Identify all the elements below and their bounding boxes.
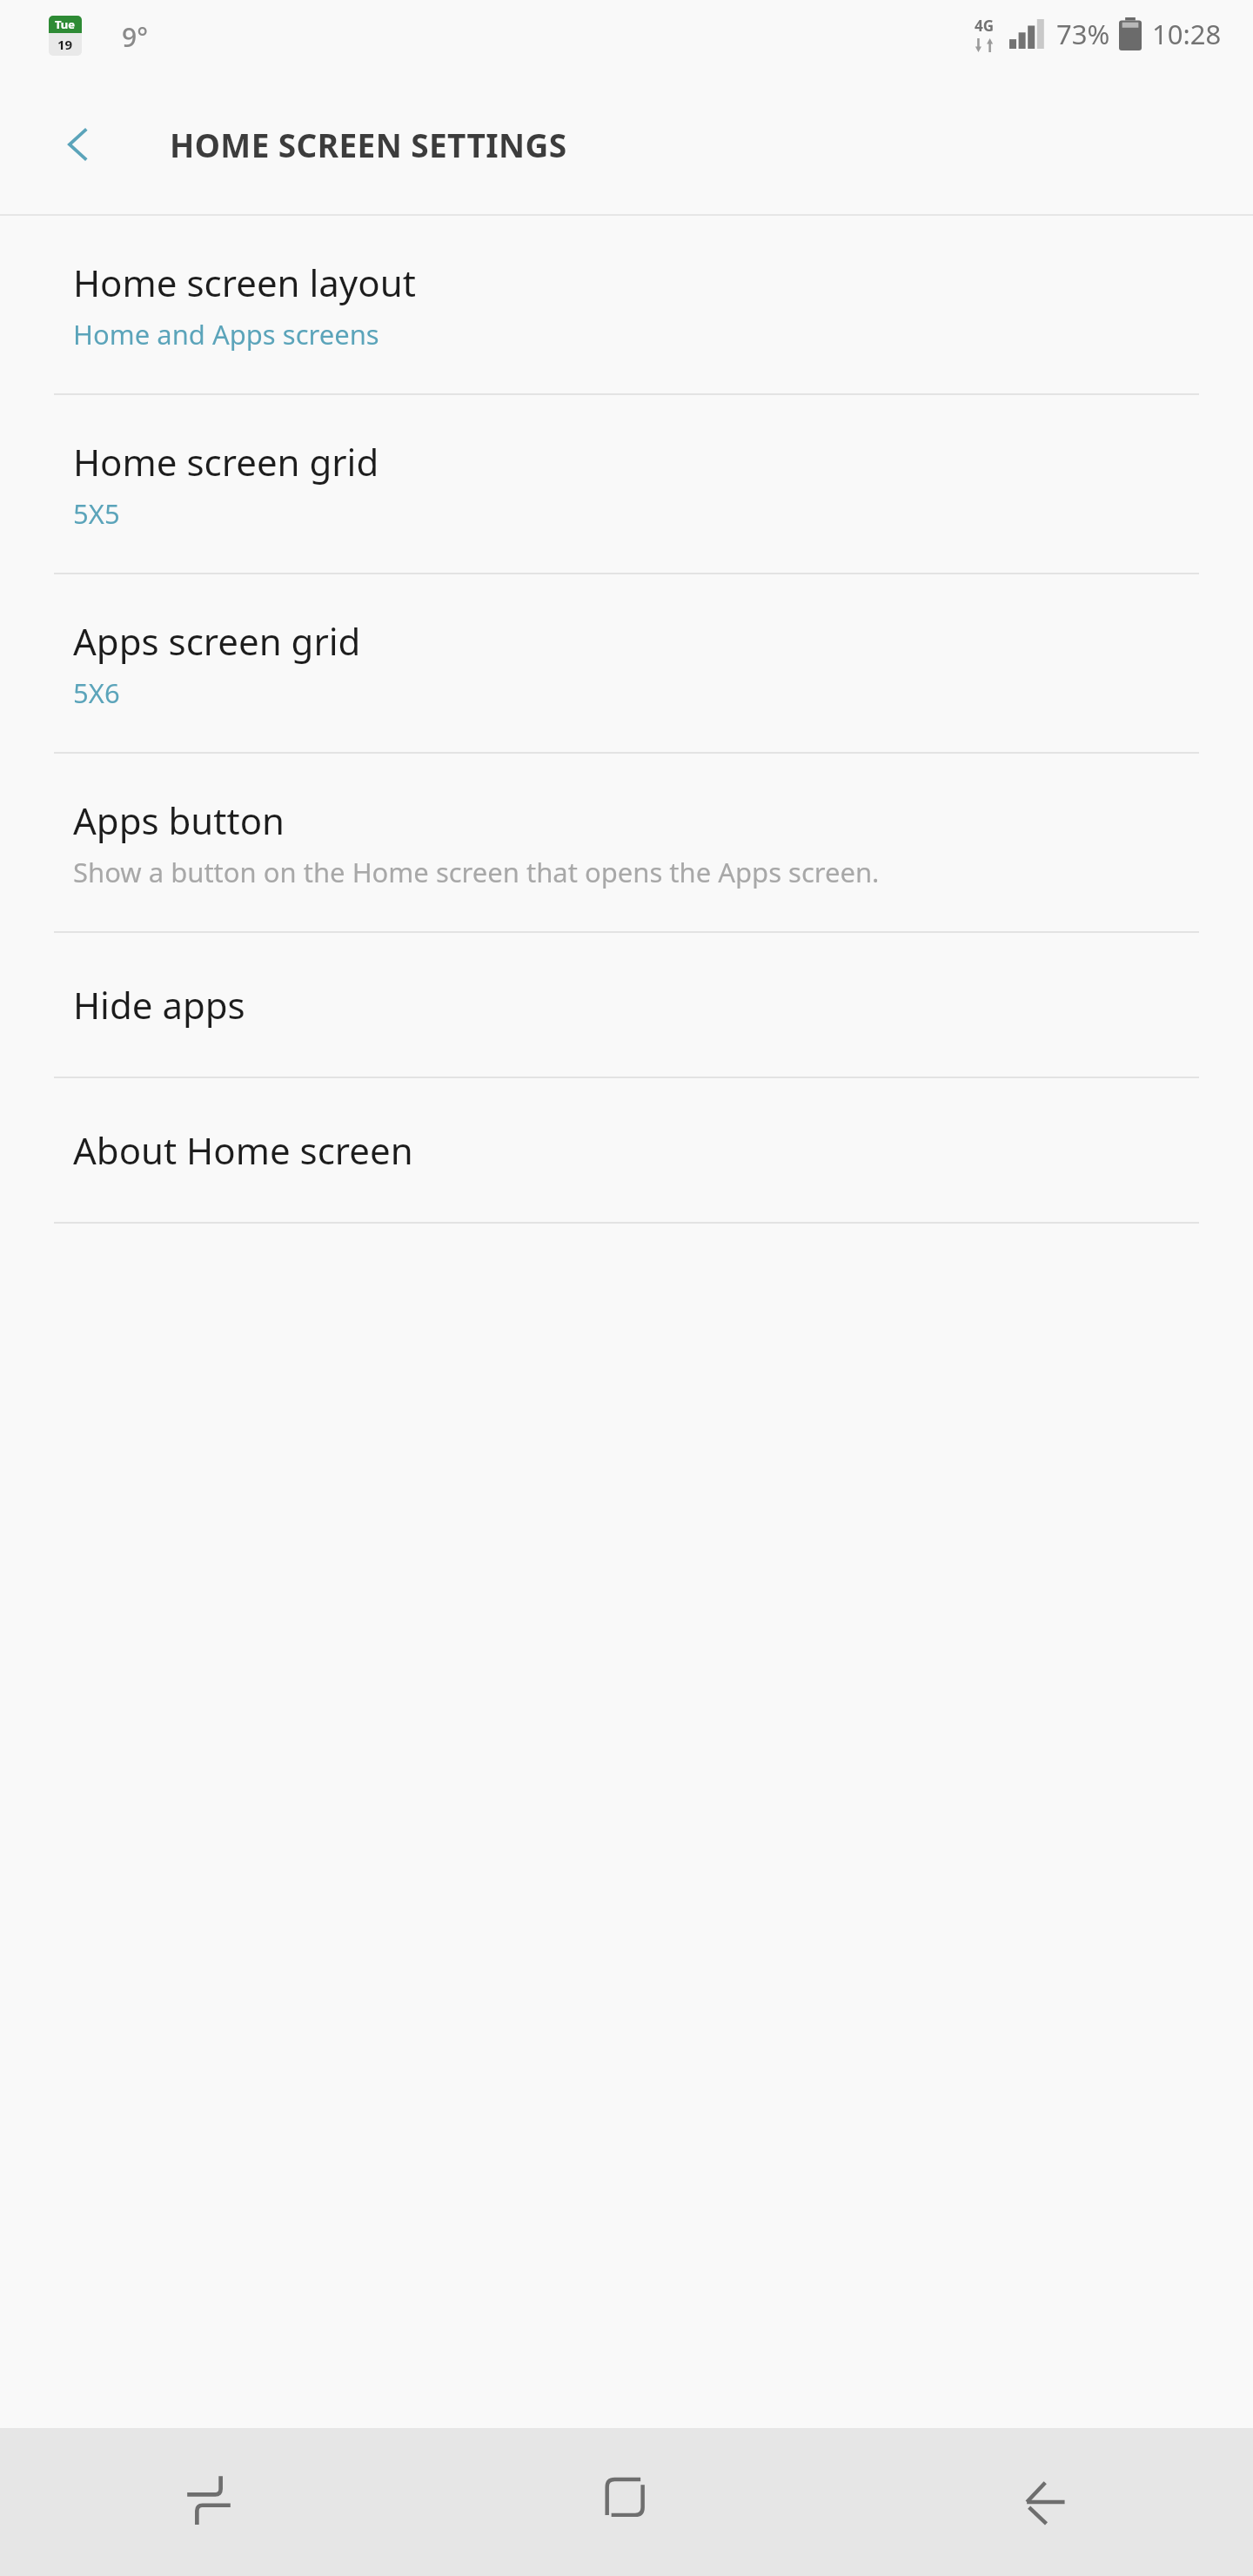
staticText: Apps button	[73, 795, 285, 845]
staticText: Home and Apps screens	[73, 316, 379, 352]
staticText: 5X5	[73, 495, 120, 532]
staticText: 73%	[1056, 16, 1110, 52]
staticText: 9°	[122, 19, 148, 55]
staticText: Home screen grid	[73, 437, 379, 486]
button[interactable]: Home screen grid	[0, 395, 1253, 573]
button[interactable]: Navigate up	[37, 103, 120, 186]
staticText: 19	[57, 36, 73, 53]
staticText: Tue	[55, 17, 76, 32]
button[interactable]: About Home screen	[0, 1078, 1253, 1222]
staticText: Hide apps	[73, 980, 245, 1030]
staticText: Apps screen grid	[73, 616, 361, 666]
staticText: HOME SCREEN SETTINGS	[170, 123, 567, 166]
button[interactable]: Home	[418, 2428, 835, 2576]
button[interactable]: Apps screen grid	[0, 574, 1253, 752]
staticText: 4G	[975, 16, 995, 36]
button[interactable]: Apps button	[0, 754, 1253, 931]
staticText: 5X6	[73, 674, 120, 711]
staticText: About Home screen	[73, 1125, 413, 1175]
button[interactable]: Back	[835, 2428, 1253, 2576]
button[interactable]: Home screen layout	[0, 216, 1253, 393]
staticText: Home screen layout	[73, 258, 416, 307]
button[interactable]: Hide apps	[0, 933, 1253, 1077]
staticText: Show a button on the Home screen that op…	[73, 854, 880, 890]
staticText: 10:28	[1152, 16, 1222, 52]
button[interactable]: Recent apps	[0, 2428, 418, 2576]
